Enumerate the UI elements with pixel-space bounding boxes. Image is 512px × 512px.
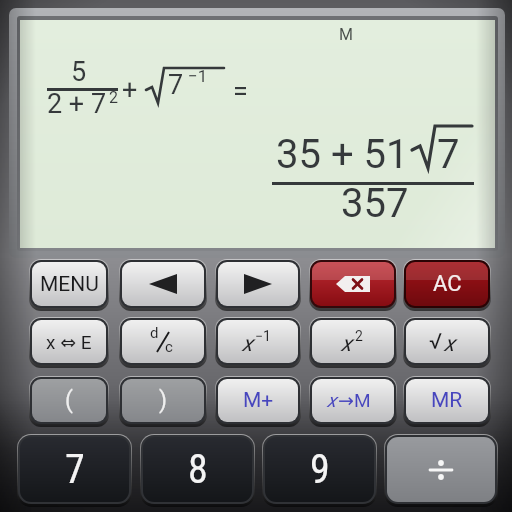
button[interactable] [310, 260, 396, 308]
staticText: → [338, 389, 354, 411]
staticText: √ [429, 329, 443, 355]
staticText: 9 [310, 446, 330, 493]
staticText: d [150, 324, 159, 342]
staticText: + [122, 74, 138, 106]
staticText: x [242, 331, 253, 357]
button[interactable]: x [310, 377, 396, 424]
staticText: c [165, 338, 173, 356]
staticText: M [354, 389, 371, 411]
button[interactable]: ( [30, 377, 108, 424]
staticText: 7 [65, 446, 85, 493]
button[interactable]: ) [120, 377, 206, 424]
button[interactable]: 8 [141, 435, 254, 504]
button[interactable]: 9 [263, 435, 376, 504]
staticText: 357 [341, 180, 409, 227]
button[interactable]: x [216, 318, 300, 365]
button[interactable] [120, 260, 206, 308]
staticText: AC [433, 271, 462, 297]
staticText: 8 [188, 446, 208, 493]
staticText: ) [159, 387, 168, 414]
staticText: ( [65, 387, 73, 414]
staticText: M [339, 25, 353, 44]
button[interactable]: x [310, 318, 396, 365]
button[interactable]: d [120, 318, 206, 365]
staticText: 2 [355, 328, 363, 344]
staticText: 2 + 7 [47, 88, 107, 120]
button[interactable]: √ [404, 318, 490, 365]
staticText: MENU [40, 272, 99, 297]
staticText: −1 [255, 328, 271, 344]
staticText: x ⇔ E [46, 331, 92, 353]
staticText: M+ [243, 388, 274, 413]
staticText: 2 [109, 88, 118, 107]
button[interactable]: 7 [18, 435, 131, 504]
staticText: = [233, 75, 248, 107]
button[interactable] [385, 435, 497, 504]
button[interactable] [216, 260, 300, 308]
staticText: 7 [168, 69, 184, 101]
staticText: 5 [71, 56, 87, 88]
button[interactable]: M+ [216, 377, 300, 424]
staticText: x [341, 331, 352, 357]
staticText: 35 + 51 [276, 131, 409, 178]
staticText: MR [431, 388, 463, 413]
button[interactable]: MR [404, 377, 490, 424]
button[interactable]: x ⇔ E [30, 318, 108, 365]
button[interactable]: AC [404, 260, 490, 308]
button[interactable]: MENU [30, 260, 108, 308]
staticText: −1 [188, 66, 208, 86]
staticText: x [327, 389, 337, 411]
staticText: x [444, 331, 455, 357]
staticText: 7 [437, 131, 460, 178]
